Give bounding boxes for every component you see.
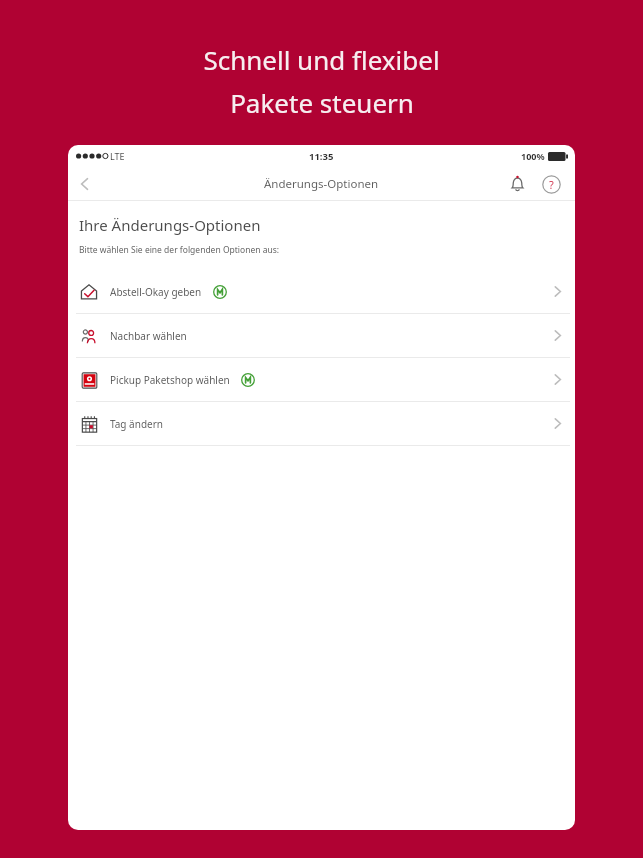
staticText: Änderungs-Optionen <box>264 176 379 192</box>
staticText: Bitte wählen Sie eine der folgenden Opti… <box>79 244 280 256</box>
staticText: Schnell und flexibel <box>203 42 440 77</box>
staticText: Abstell-Okay geben <box>110 285 202 299</box>
staticText: Ihre Änderungs-Optionen <box>79 215 261 235</box>
staticText: Pickup Paketshop wählen <box>110 373 230 387</box>
staticText: Tag ändern <box>110 417 164 431</box>
button[interactable]: Hilfe <box>537 170 565 198</box>
button[interactable]: Zurück <box>68 167 102 200</box>
staticText: 11:35 <box>309 150 334 163</box>
staticText: ? <box>549 177 554 192</box>
button[interactable]: Pickup Paketshop wählen <box>68 358 575 401</box>
button[interactable]: Nachbar wählen <box>68 314 575 357</box>
staticText: Nachbar wählen <box>110 329 187 343</box>
staticText: LTE <box>110 150 125 162</box>
button[interactable]: Benachrichtigungen <box>503 170 531 198</box>
button[interactable]: Abstell-Okay geben <box>68 270 575 313</box>
button[interactable]: Tag ändern <box>68 402 575 445</box>
staticText: 100% <box>521 150 545 162</box>
staticText: Pakete steuern <box>230 85 414 120</box>
